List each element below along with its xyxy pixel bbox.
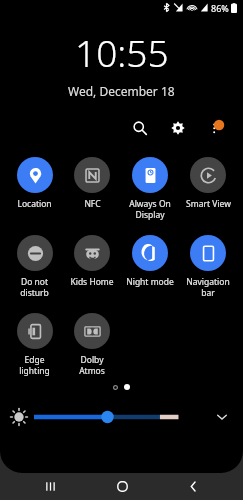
staticText: NFC bbox=[84, 198, 101, 210]
staticText: Smart View bbox=[186, 198, 231, 210]
button[interactable]: Always On Display bbox=[121, 155, 179, 222]
button[interactable]: Recents bbox=[28, 473, 72, 500]
staticText: Always On Display bbox=[129, 198, 171, 220]
button[interactable]: NFC bbox=[63, 155, 121, 212]
button[interactable]: Navigation bar bbox=[179, 233, 237, 300]
button[interactable]: Night mode bbox=[121, 233, 179, 290]
button[interactable]: Smart View bbox=[179, 155, 237, 212]
button[interactable]: Home bbox=[100, 473, 144, 500]
button[interactable]: Brightness bbox=[34, 407, 203, 427]
button[interactable]: Settings bbox=[165, 115, 191, 141]
button[interactable]: Location bbox=[6, 155, 63, 212]
staticText: Do not disturb bbox=[20, 276, 49, 298]
button[interactable]: Kids Home bbox=[63, 233, 121, 290]
staticText: Location bbox=[17, 198, 52, 210]
staticText: 86% bbox=[211, 2, 229, 14]
staticText: Night mode bbox=[126, 276, 174, 288]
staticText: Kids Home bbox=[70, 276, 114, 288]
button[interactable]: Dolby Atmos bbox=[63, 311, 121, 378]
button[interactable]: Do not disturb bbox=[6, 233, 63, 300]
button[interactable]: Edge lighting bbox=[6, 311, 63, 378]
button[interactable]: Expand brightness settings bbox=[211, 406, 233, 428]
staticText: Navigation bar bbox=[186, 276, 230, 298]
button[interactable]: Search bbox=[127, 115, 153, 141]
staticText: 10:55 bbox=[75, 27, 169, 77]
staticText: Edge lighting bbox=[19, 354, 50, 376]
staticText: Dolby Atmos bbox=[79, 354, 105, 376]
button[interactable]: Back bbox=[171, 473, 215, 500]
button[interactable]: More options bbox=[203, 115, 229, 141]
staticText: Wed, December 18 bbox=[68, 83, 175, 99]
